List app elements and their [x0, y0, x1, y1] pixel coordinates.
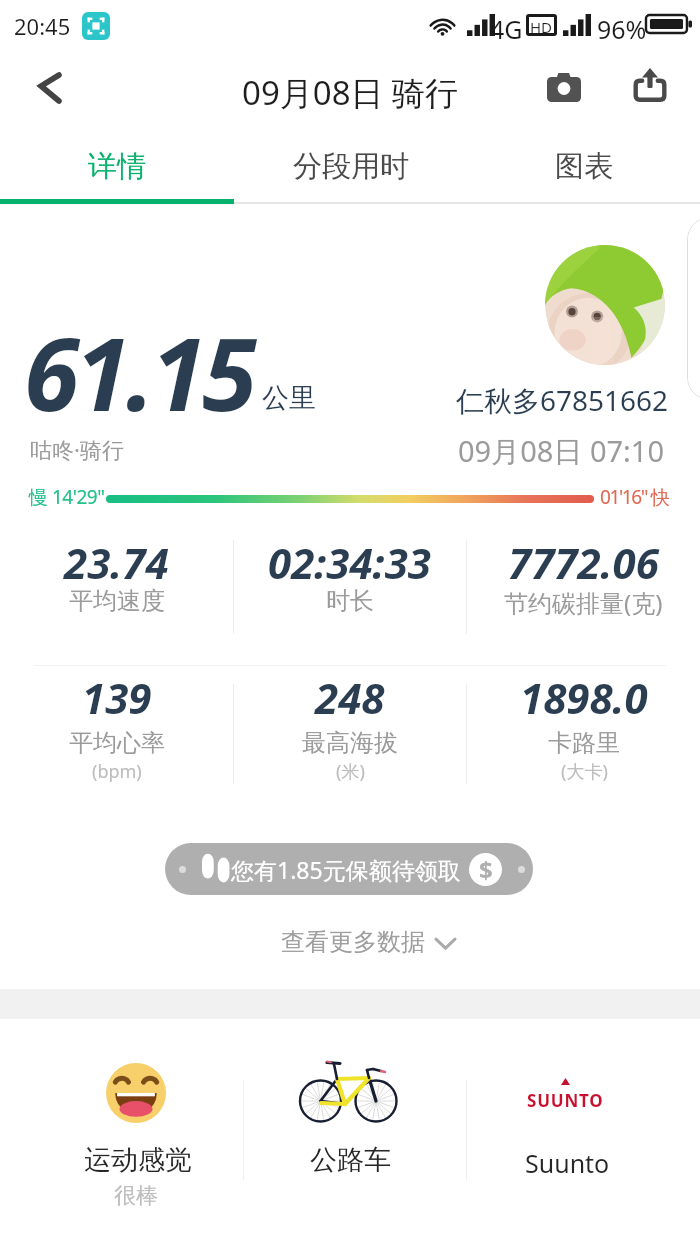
button[interactable]: 02:34:33 — [233, 534, 466, 664]
button[interactable]: 139 — [0, 669, 233, 799]
button[interactable]: 查看更多数据 — [265, 918, 470, 966]
button[interactable]: 图表 — [467, 131, 700, 201]
staticText: 咕咚·骑行 — [30, 434, 124, 464]
button[interactable]: User avatar — [545, 245, 665, 365]
staticText: Suunto — [525, 1146, 610, 1180]
staticText: (bpm) — [92, 759, 142, 784]
button[interactable]: 7772.06 — [467, 534, 700, 664]
staticText: 很棒 — [114, 1182, 158, 1210]
staticText: 96% — [597, 12, 647, 46]
staticText: 01'16" 快 — [600, 484, 669, 510]
staticText: 仁秋多67851662 — [456, 381, 669, 419]
staticText: 公路车 — [310, 1143, 391, 1177]
staticText: SUUNTO — [527, 1089, 604, 1112]
button[interactable]: 分段用时 — [234, 131, 467, 201]
staticText: 248 — [315, 669, 385, 726]
button[interactable]: Share — [625, 60, 675, 110]
button[interactable]: 详情 — [0, 131, 234, 201]
staticText: (大卡) — [561, 759, 608, 784]
staticText: 分段用时 — [293, 148, 409, 185]
button[interactable]: 运动感觉 — [0, 1030, 243, 1230]
staticText: 卡路里 — [548, 728, 620, 758]
staticText: (米) — [336, 759, 365, 784]
staticText: 4G — [490, 12, 523, 46]
staticText: 查看更多数据 — [281, 927, 425, 957]
button[interactable]: Back — [31, 62, 69, 110]
staticText: 图表 — [555, 148, 613, 185]
staticText: 运动感觉 — [84, 1143, 192, 1177]
staticText: $ — [479, 853, 493, 886]
staticText: 时长 — [326, 586, 374, 616]
staticText: 平均速度 — [69, 586, 165, 616]
staticText: 详情 — [88, 148, 146, 185]
staticText: 1898.0 — [520, 669, 648, 726]
staticText: 139 — [82, 669, 152, 726]
staticText: 慢 14'29" — [29, 484, 105, 510]
staticText: 20:45 — [14, 11, 71, 41]
button[interactable]: 公路车 — [243, 1030, 466, 1230]
staticText: 09月08日 07:10 — [458, 431, 665, 471]
staticText: 09月08日 骑行 — [242, 70, 459, 115]
staticText: 您有1.85元保额待领取 — [231, 854, 461, 885]
button[interactable]: Camera — [539, 62, 589, 110]
button[interactable]: 23.74 — [0, 534, 233, 664]
button[interactable]: SUUNTO — [466, 1030, 700, 1230]
staticText: HD — [530, 17, 553, 33]
staticText: 23.74 — [64, 534, 169, 591]
staticText: 61.15 — [24, 304, 254, 440]
staticText: 平均心率 — [69, 728, 165, 758]
button[interactable]: 248 — [233, 669, 466, 799]
staticText: 7772.06 — [508, 534, 659, 591]
staticText: 节约碳排量(克) — [504, 586, 663, 619]
staticText: 公里 — [262, 381, 316, 415]
button[interactable]: 您有1.85元保额待领取 — [165, 843, 533, 895]
staticText: 02:34:33 — [268, 534, 431, 591]
staticText: 最高海拔 — [302, 728, 398, 758]
button[interactable]: 1898.0 — [467, 669, 700, 799]
